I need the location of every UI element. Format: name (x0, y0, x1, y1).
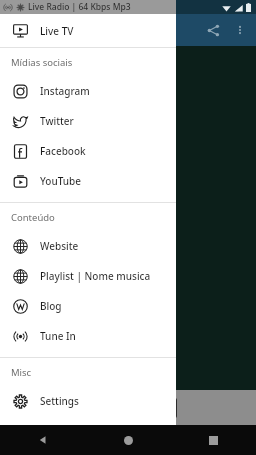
button[interactable]: Playlist | Nome musica (0, 261, 176, 291)
button[interactable]: Share (198, 15, 228, 45)
staticText: Instagram (40, 84, 90, 98)
button[interactable]: Home (86, 425, 171, 455)
staticText: Facebook (40, 144, 86, 158)
staticText: Misc (11, 366, 32, 379)
button[interactable]: More options (228, 18, 252, 42)
button[interactable]: Tune In (0, 321, 176, 351)
staticText: Tune In (40, 329, 76, 343)
button[interactable]: Back (0, 425, 86, 455)
button[interactable]: YouTube (0, 166, 176, 196)
staticText: Mídias sociais (11, 56, 73, 69)
button[interactable]: Live TV (0, 14, 176, 47)
button[interactable]: Recent apps (171, 425, 256, 455)
button[interactable]: OPEN (115, 398, 177, 418)
staticText: Website (40, 239, 79, 253)
staticText: Live Radio | 64 Kbps Mp3 (28, 1, 131, 13)
staticText: Playlist | Nome musica (40, 269, 151, 283)
staticText: Blog (40, 299, 62, 313)
staticText: YouTube (40, 174, 82, 188)
staticText: Settings (40, 394, 79, 408)
button[interactable]: Facebook (0, 136, 176, 166)
button[interactable]: Settings (0, 386, 176, 416)
staticText: Twitter (40, 114, 74, 128)
staticText: Conteúdo (11, 211, 55, 224)
button[interactable]: Twitter (0, 106, 176, 136)
staticText: Live TV (40, 24, 74, 38)
button[interactable]: Website (0, 231, 176, 261)
button[interactable]: Instagram (0, 76, 176, 106)
button[interactable]: Blog (0, 291, 176, 321)
